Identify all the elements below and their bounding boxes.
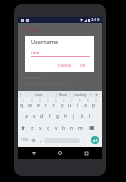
staticText: 2:10 [91, 17, 100, 23]
button[interactable]: Settings [18, 23, 102, 35]
staticText: Settings [22, 26, 42, 33]
button[interactable]: Backspace [84, 122, 99, 134]
button[interactable]: Recents [80, 147, 92, 159]
staticText: OK [80, 63, 86, 68]
button[interactable]: 4 [42, 98, 50, 110]
staticText: w [28, 102, 32, 109]
button[interactable]: 6 [58, 98, 66, 110]
staticText: k [81, 113, 84, 120]
button[interactable]: 0 [90, 98, 98, 110]
button[interactable]: z [28, 122, 36, 134]
staticText: j [73, 113, 75, 120]
button[interactable]: Back [28, 147, 40, 159]
button[interactable]: rooting [70, 91, 90, 98]
button[interactable]: n [68, 122, 76, 134]
staticText: rooting [74, 92, 87, 97]
staticText: 7 [71, 99, 73, 103]
staticText: q [20, 102, 24, 109]
button[interactable]: Period [80, 134, 87, 146]
staticText: Username [31, 38, 59, 45]
button[interactable]: b [60, 122, 68, 134]
button[interactable]: OK [78, 61, 88, 70]
staticText: . [83, 137, 85, 143]
button[interactable]: 7 [66, 98, 74, 110]
staticText: i [77, 102, 79, 109]
staticText: y [61, 102, 64, 109]
button[interactable]: 2 [26, 98, 34, 110]
staticText: t [53, 102, 55, 109]
button[interactable]: c [44, 122, 52, 134]
button[interactable]: v [52, 122, 60, 134]
staticText: c [47, 125, 50, 132]
staticText: s [33, 113, 36, 120]
staticText: 1 [23, 99, 25, 103]
button[interactable]: Home [54, 147, 66, 159]
staticText: 4 [47, 99, 49, 103]
button[interactable]: l [86, 110, 94, 122]
button[interactable]: Shift [18, 122, 28, 134]
staticText: d [40, 113, 44, 120]
staticText: root [35, 92, 43, 97]
staticText: 0 [95, 99, 97, 103]
staticText: 3 [39, 99, 41, 103]
staticText: g [56, 113, 60, 120]
button[interactable]: g [54, 110, 62, 122]
button[interactable]: 8 [74, 98, 82, 110]
staticText: r [45, 102, 48, 109]
staticText: l [89, 113, 91, 120]
staticText: root [31, 50, 40, 56]
button[interactable]: 9 [82, 98, 90, 110]
staticText: n [70, 125, 74, 132]
staticText: CANCEL [58, 63, 73, 68]
staticText: 6 [63, 99, 65, 103]
button[interactable]: f [46, 110, 54, 122]
staticText: e [37, 102, 40, 109]
button[interactable]: h [62, 110, 70, 122]
staticText: 5 [55, 99, 57, 103]
staticText: Username [22, 75, 43, 81]
button[interactable]: 5 [50, 98, 58, 110]
button[interactable]: k [78, 110, 86, 122]
button[interactable]: s [30, 110, 38, 122]
button[interactable]: j [70, 110, 78, 122]
staticText: p [92, 102, 96, 109]
button[interactable]: Root [57, 91, 69, 98]
button[interactable]: Enter [87, 134, 102, 146]
staticText: 2 [31, 99, 33, 103]
button[interactable]: Change keyboard [30, 134, 37, 146]
staticText: x [39, 125, 42, 132]
button[interactable]: Comma [37, 134, 44, 146]
button[interactable]: More suggestions [91, 91, 102, 98]
staticText: h [64, 113, 68, 120]
staticText: m [78, 125, 83, 132]
button[interactable]: 1 [18, 98, 26, 110]
staticText: ?123 [21, 138, 28, 142]
button[interactable]: x [36, 122, 44, 134]
staticText: o [84, 102, 88, 109]
button[interactable]: d [38, 110, 46, 122]
staticText: f [49, 113, 51, 120]
button[interactable]: root [21, 91, 56, 98]
button[interactable]: a [22, 110, 30, 122]
button[interactable]: 3 [34, 98, 42, 110]
staticText: a [25, 113, 28, 120]
button[interactable]: ?123 [18, 134, 30, 146]
button[interactable]: CANCEL [56, 61, 75, 70]
staticText: 8 [79, 99, 81, 103]
staticText: z [31, 125, 34, 132]
button[interactable]: Space [44, 134, 80, 146]
staticText: u [68, 102, 72, 109]
staticText: 9 [87, 99, 89, 103]
staticText: b [62, 125, 66, 132]
button[interactable]: m [76, 122, 84, 134]
staticText: v [55, 125, 58, 132]
staticText: Root [59, 92, 67, 97]
staticText: , [40, 137, 42, 143]
